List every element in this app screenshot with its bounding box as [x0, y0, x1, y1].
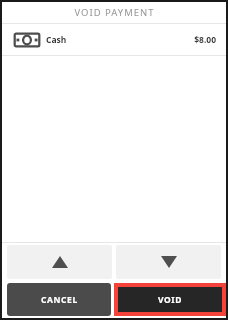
button[interactable]: Scroll up: [7, 245, 112, 279]
staticText: $8.00: [194, 34, 216, 46]
staticText: Cash: [46, 34, 67, 46]
staticText: VOID: [158, 294, 183, 306]
button[interactable]: CANCEL: [7, 283, 111, 316]
button[interactable]: Scroll down: [116, 245, 221, 279]
staticText: VOID PAYMENT: [74, 6, 155, 19]
button[interactable]: VOID: [114, 283, 226, 316]
staticText: CANCEL: [41, 294, 78, 306]
button[interactable]: Cash: [2, 24, 226, 55]
